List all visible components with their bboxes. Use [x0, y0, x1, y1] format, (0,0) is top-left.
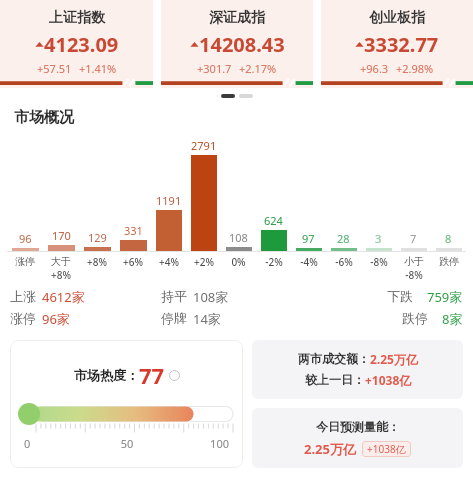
staticText: 3 [375, 231, 382, 246]
staticText: 100 [161, 436, 229, 451]
staticText: 108 [229, 230, 248, 245]
staticText: +6% [123, 255, 143, 269]
staticText: +4% [159, 255, 179, 269]
staticText: -8% [370, 255, 388, 269]
staticText: 14家 [193, 310, 221, 328]
staticText: +8% [51, 268, 71, 282]
staticText: 77 [139, 360, 165, 390]
staticText: +8% [87, 255, 107, 269]
staticText: 市场概况 [14, 108, 74, 127]
staticText: 96家 [42, 310, 70, 328]
staticText: 上涨 [10, 288, 36, 304]
button[interactable]: 深证成指 [161, 0, 313, 88]
staticText: 4123.09 [44, 31, 119, 58]
staticText: 3332.77 [364, 31, 439, 58]
staticText: +2.98% [396, 61, 434, 76]
button[interactable]: 两市成交额： [252, 340, 463, 399]
staticText: 8家 [442, 310, 463, 328]
staticText: 涨停 [10, 310, 36, 326]
staticText: 小于 [404, 255, 424, 268]
staticText: 涨停 [15, 255, 35, 268]
button[interactable]: 创业板指 [321, 0, 473, 88]
staticText: 129 [88, 230, 107, 245]
staticText: +1038亿 [365, 372, 412, 388]
staticText: 170 [52, 228, 71, 243]
staticText: +96.3 [360, 61, 389, 76]
staticText: +1.41% [79, 61, 117, 76]
staticText: 4612家 [42, 288, 85, 306]
staticText: 深证成指 [209, 9, 265, 27]
staticText: 2791 [191, 138, 217, 153]
staticText: +2.17% [239, 61, 277, 76]
staticText: 759家 [427, 288, 463, 306]
staticText: 今日预测量能： [316, 419, 400, 434]
staticText: 2.25万亿 [370, 351, 418, 367]
staticText: 创业板指 [369, 9, 425, 27]
button[interactable]: 上证指数 [0, 0, 153, 88]
staticText: 1191 [156, 193, 182, 208]
staticText: 97 [302, 231, 315, 246]
staticText: +301.7 [197, 61, 232, 76]
staticText: 2.25万亿 [304, 440, 356, 458]
staticText: 下跌 [387, 288, 413, 304]
staticText: 0% [231, 255, 246, 269]
staticText: 跌停 [439, 255, 459, 268]
button[interactable]: 今日预测量能： [252, 408, 463, 468]
staticText: 28 [337, 231, 350, 246]
other: 热度说明 [169, 370, 180, 381]
staticText: 停牌 [161, 310, 187, 326]
staticText: 上证指数 [49, 9, 105, 27]
staticText: +57.51 [37, 61, 72, 76]
staticText: -4% [300, 255, 318, 269]
staticText: 跌停 [402, 310, 428, 326]
staticText: 624 [264, 213, 283, 228]
staticText: +1038亿 [367, 442, 406, 456]
staticText: 8 [445, 231, 452, 246]
staticText: -6% [335, 255, 353, 269]
staticText: 市场热度： [74, 367, 139, 383]
staticText: 50 [93, 436, 161, 451]
staticText: 14208.43 [199, 31, 285, 58]
staticText: 108家 [193, 288, 229, 306]
button[interactable]: 市场热度： [10, 340, 243, 468]
staticText: 较上一日： [305, 372, 365, 387]
staticText: 96 [19, 231, 32, 246]
staticText: 持平 [161, 288, 187, 304]
staticText: 大于 [51, 255, 71, 268]
staticText: 两市成交额： [298, 351, 370, 366]
staticText: -8% [405, 268, 423, 282]
staticText: 7 [410, 231, 417, 246]
staticText: 0 [24, 436, 93, 451]
staticText: 331 [124, 223, 143, 238]
staticText: +2% [194, 255, 214, 269]
staticText: -2% [265, 255, 283, 269]
